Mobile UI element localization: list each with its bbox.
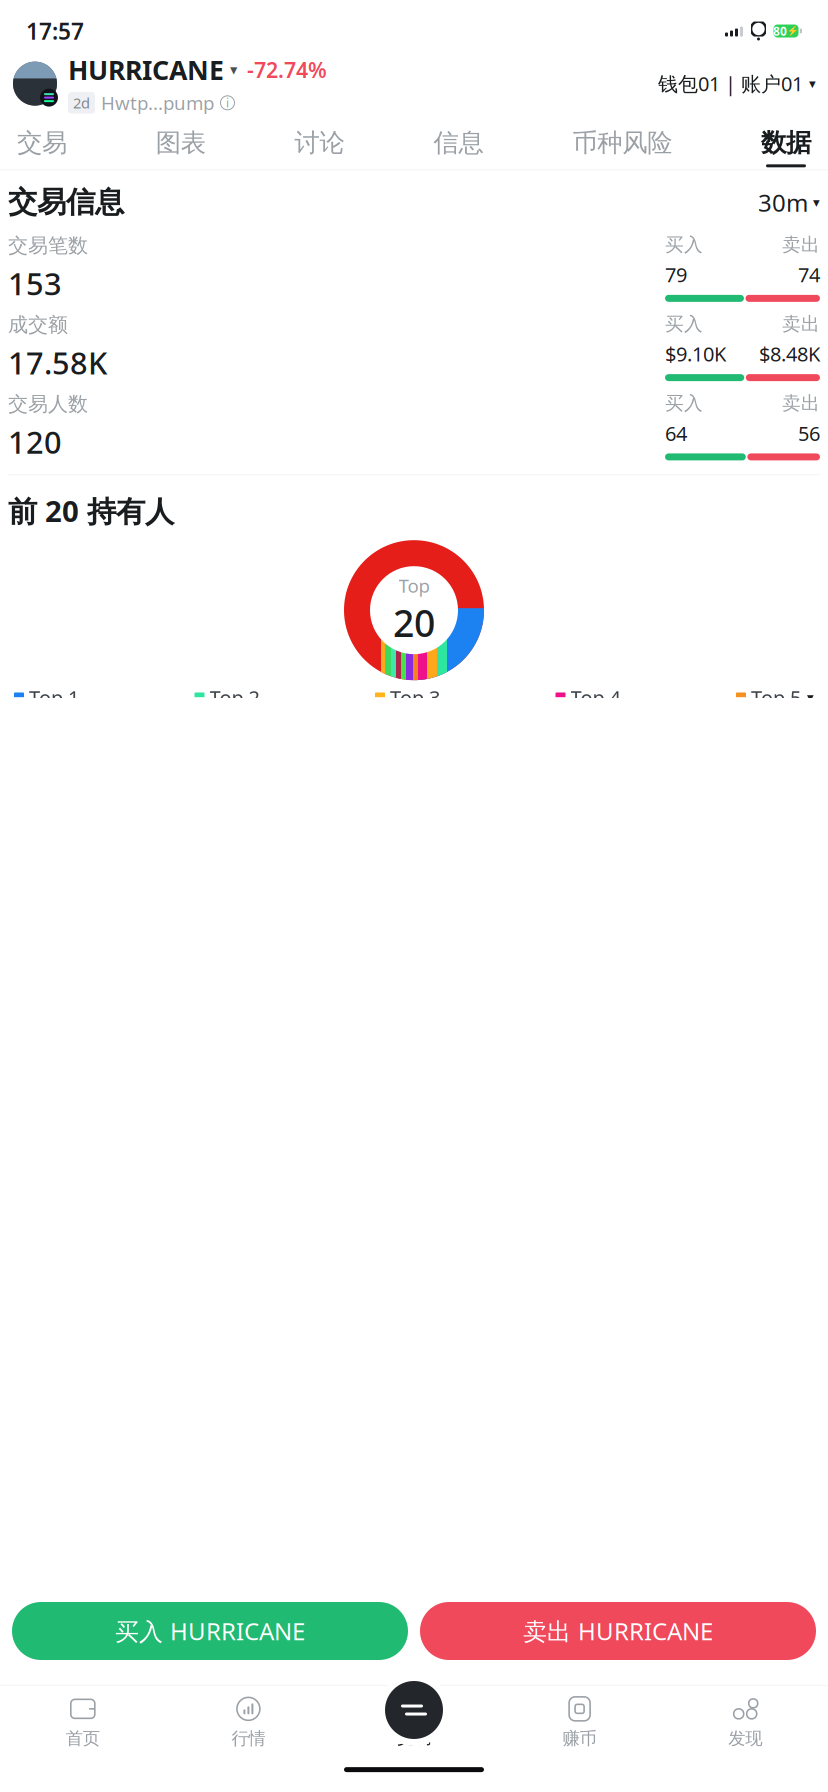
staticText: ▾ <box>813 195 820 210</box>
staticText: 买入 <box>665 313 703 335</box>
staticText: $9.10K <box>665 341 726 367</box>
staticText: ▾ <box>230 61 237 78</box>
staticText: 币种风险 <box>572 127 672 158</box>
button[interactable]: 卖出 HURRICANE <box>420 1602 816 1660</box>
staticText: i <box>226 95 229 111</box>
staticText: 讨论 <box>295 127 345 158</box>
button[interactable]: 发现 <box>662 1696 828 1749</box>
button[interactable]: 交易 <box>378 1674 450 1746</box>
staticText: ⚡ <box>787 26 799 36</box>
staticText: 钱包01 | 账户01 <box>658 70 803 97</box>
staticText: 行情 <box>231 1728 265 1749</box>
staticText: 30m <box>758 186 808 218</box>
button[interactable]: 交易 <box>8 127 76 169</box>
button[interactable]: HURRICANE <box>12 52 327 115</box>
staticText: Hwtp...pump <box>101 90 214 115</box>
staticText: -72.74% <box>247 55 327 84</box>
staticText: 卖出 <box>782 392 820 415</box>
staticText: 17:57 <box>26 16 84 46</box>
staticText: Top 5 <box>751 684 801 711</box>
button[interactable]: 数据 <box>752 127 820 169</box>
staticText: 发现 <box>728 1728 762 1749</box>
staticText: Top 2 <box>209 684 259 711</box>
staticText: 买入 <box>665 233 703 256</box>
staticText: HURRICANE <box>68 52 224 87</box>
staticText: 64 <box>665 420 687 446</box>
staticText: 卖出 <box>782 313 820 335</box>
button[interactable]: 行情 <box>166 1696 331 1749</box>
staticText: 首页 <box>66 1728 100 1749</box>
button[interactable]: 图表 <box>147 127 215 169</box>
staticText: 交易 <box>397 1727 431 1748</box>
button[interactable]: 信息 <box>424 127 492 169</box>
staticText: 交易人数 <box>8 392 88 416</box>
staticText: 20 <box>393 598 435 647</box>
staticText: $8.48K <box>759 341 820 367</box>
staticText: 交易 <box>17 127 67 158</box>
staticText: 交易笔数 <box>8 233 88 258</box>
staticText: 56 <box>798 420 820 446</box>
button[interactable]: 30m <box>758 186 820 218</box>
staticText: 153 <box>8 263 62 304</box>
button[interactable]: 币种风险 <box>563 127 681 169</box>
button[interactable]: Top 1 <box>14 684 79 711</box>
staticText: 信息 <box>433 127 483 158</box>
button[interactable]: 展开图例 <box>801 690 814 705</box>
staticText: 成交额 <box>8 313 68 337</box>
staticText: 120 <box>8 421 62 462</box>
staticText: ▾ <box>809 76 816 91</box>
staticText: 80 <box>773 23 787 39</box>
button[interactable]: Top 2 <box>194 684 259 711</box>
button[interactable]: 买入 HURRICANE <box>12 1602 408 1660</box>
staticText: Top <box>398 573 429 598</box>
button[interactable]: Top 4 <box>555 684 620 711</box>
button[interactable]: 讨论 <box>286 127 354 169</box>
staticText: 2d <box>73 93 90 113</box>
button[interactable]: Top 3 <box>375 684 440 711</box>
staticText: 卖出 HURRICANE <box>523 1615 713 1647</box>
staticText: Top 1 <box>29 684 79 711</box>
staticText: Top 4 <box>570 684 620 711</box>
staticText: Top 3 <box>390 684 440 711</box>
staticText: 买入 <box>665 392 703 415</box>
staticText: 图表 <box>156 127 206 158</box>
staticText: 17.58K <box>8 342 107 383</box>
staticText: 数据 <box>761 127 811 158</box>
staticText: 79 <box>665 261 687 288</box>
staticText: 交易信息 <box>8 184 124 220</box>
staticText: 买入 HURRICANE <box>115 1615 305 1647</box>
staticText: 赚币 <box>563 1728 597 1749</box>
button[interactable]: Top 5 <box>736 684 801 711</box>
staticText: 卖出 <box>782 233 820 256</box>
staticText: 74 <box>798 261 820 288</box>
staticText: 前 20 持有人 <box>8 491 174 530</box>
button[interactable]: 钱包01 | 账户01 <box>658 70 816 97</box>
staticText: ▾ <box>807 690 814 705</box>
button[interactable]: 首页 <box>0 1696 166 1749</box>
button[interactable]: 赚币 <box>497 1696 662 1749</box>
